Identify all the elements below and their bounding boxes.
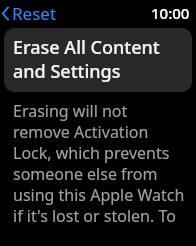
staticText: 10:00 (151, 3, 190, 23)
staticText: Erasing will not remove Activation Lock,… (13, 100, 188, 227)
button[interactable]: Back (0, 0, 63, 26)
button[interactable]: Erase All Content and Settings (4, 28, 192, 92)
other: Back (1, 6, 10, 21)
staticText: Reset (12, 2, 57, 25)
staticText: Erase All Content and Settings (13, 35, 184, 83)
